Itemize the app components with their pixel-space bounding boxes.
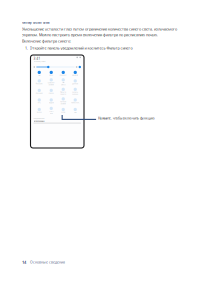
staticText: режим [49,84,54,86]
staticText: Фильтр синего света [22,21,50,24]
staticText: экраном. Можно настроить время включения… [22,32,158,37]
staticText: Уход [61,111,65,113]
button[interactable]: Уход [57,108,69,113]
button[interactable]: Поворот [57,71,69,76]
staticText: Поворот [60,74,67,76]
staticText: Откройте панель уведомлений и коснитесь … [30,45,133,51]
staticText: режим [61,103,66,105]
staticText: Wi-Fi [38,74,40,76]
button[interactable]: Локация [33,89,45,94]
button[interactable]: Bluetooth [69,71,81,76]
button[interactable]: Самолёт [45,78,57,86]
staticText: Локация [36,92,43,94]
button[interactable]: Фонарик [33,79,45,85]
staticText: 14 [22,259,26,265]
staticText: Не беспок. [71,102,79,104]
staticText: Direct [61,84,65,86]
staticText: Фонарик [36,83,43,85]
button[interactable]: Не беспок. [69,98,81,104]
staticText: Всё в порядке [33,120,44,122]
staticText: синего [60,93,66,95]
button[interactable]: Wi-Fi [57,78,69,86]
button[interactable]: Запись [69,88,81,95]
button[interactable]: Экран [33,108,45,113]
staticText: Экран [37,111,42,113]
staticText: Синхр. [49,92,54,94]
button[interactable]: Wi-Fi [33,71,45,76]
button[interactable]: Ещё [69,108,81,113]
staticText: View [50,112,53,114]
button[interactable]: Smart [45,107,57,114]
staticText: Нажмите, чтобы включить функцию [98,116,155,120]
staticText: Wi-Fi [62,82,64,83]
staticText: Основные сведения [30,260,65,265]
staticText: Фильтр [60,91,66,93]
staticText: Уменьшение усталости глаз путем ограниче… [22,26,177,32]
staticText: 1. [25,45,28,51]
staticText: Ночной [60,101,66,103]
staticText: Включение фильтра синего: [22,38,71,44]
button[interactable]: Звук [45,71,57,76]
staticText: Smart [49,110,53,112]
staticText: Вторник, 12 мая [33,61,45,62]
staticText: Звук [49,74,53,76]
staticText: Ещё [74,111,77,113]
staticText: Модем [49,102,54,104]
button[interactable]: Синхр. [45,89,57,94]
button[interactable]: NFC [33,98,45,104]
staticText: NFC [38,102,41,104]
staticText: Данные [72,83,78,85]
staticText: Самолёт [48,82,55,83]
staticText: Запись [72,91,78,93]
button[interactable]: Данные [69,79,81,85]
staticText: 3:41 [33,57,40,61]
staticText: экрана [72,93,78,95]
staticText: Bluetooth [72,74,78,76]
button[interactable]: Фильтр [57,88,69,95]
button[interactable]: Модем [45,98,57,104]
button[interactable]: Ночной [57,97,69,105]
